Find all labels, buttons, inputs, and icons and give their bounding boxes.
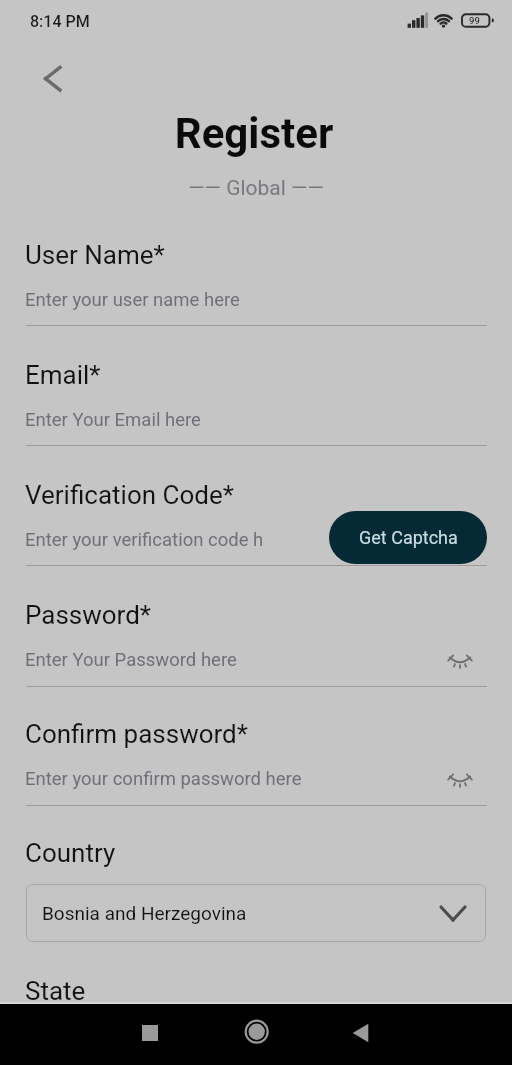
button[interactable]: Enter your confirm password here [26,755,487,806]
button[interactable]: Back [30,58,72,100]
staticText: 8:14 PM [30,12,90,31]
staticText: State [25,976,86,1006]
button[interactable]: Toggle password visibility [442,761,478,797]
staticText: Enter Your Password here [25,649,237,671]
staticText: 99 [469,15,480,26]
staticText: Register [0,109,510,158]
button[interactable]: Enter your verification code h [26,516,487,566]
staticText: —— Global —— [0,176,512,201]
staticText: Verification Code* [25,480,234,510]
staticText: Enter your user name here [25,289,240,311]
staticText: Confirm password* [25,719,248,749]
staticText: Get Captcha [359,527,458,548]
staticText: Password* [25,600,152,630]
button[interactable]: Enter your user name here [26,276,487,326]
button[interactable]: Recents [128,1011,172,1055]
button[interactable]: Enter Your Password here [26,636,487,687]
button[interactable]: Back [340,1011,384,1055]
staticText: User Name* [25,240,165,270]
button[interactable]: Bosnia and Herzegovina [26,884,486,942]
staticText: Enter your verification code h [25,529,264,551]
staticText: Enter Your Email here [25,409,201,431]
button[interactable]: Toggle password visibility [442,642,478,678]
button[interactable]: Get Captcha [329,511,487,564]
staticText: Enter your confirm password here [25,768,302,790]
button[interactable]: Enter Your Email here [26,396,487,446]
staticText: Email* [25,360,101,390]
button[interactable]: Home [235,1010,279,1054]
staticText: Bosnia and Herzegovina [42,902,247,924]
staticText: Country [25,838,116,868]
